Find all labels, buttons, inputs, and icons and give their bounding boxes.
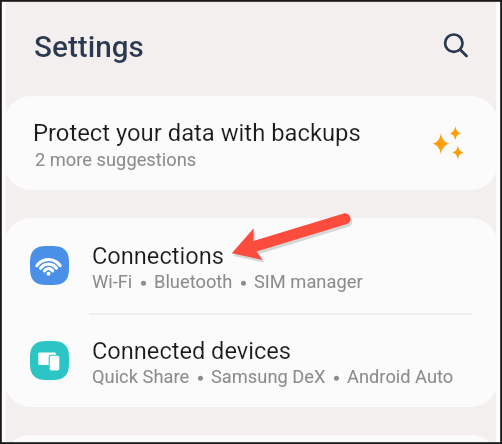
staticText: SIM manager: [254, 271, 363, 292]
button[interactable]: Connections: [4, 218, 498, 313]
staticText: Protect your data with backups: [33, 119, 361, 147]
staticText: Android Auto: [347, 366, 454, 387]
staticText: Wi-Fi: [92, 271, 133, 292]
staticText: 2 more suggestions: [35, 149, 197, 170]
button[interactable]: Connected devices: [4, 315, 498, 407]
staticText: Samsung DeX: [211, 366, 326, 387]
staticText: Settings: [34, 29, 144, 64]
staticText: Bluetooth: [154, 271, 233, 292]
staticText: Connected devices: [92, 337, 291, 365]
button[interactable]: Protect your data with backups: [4, 96, 498, 190]
staticText: Quick Share: [92, 366, 190, 387]
staticText: Connections: [92, 242, 224, 270]
button[interactable]: Search: [434, 24, 486, 76]
